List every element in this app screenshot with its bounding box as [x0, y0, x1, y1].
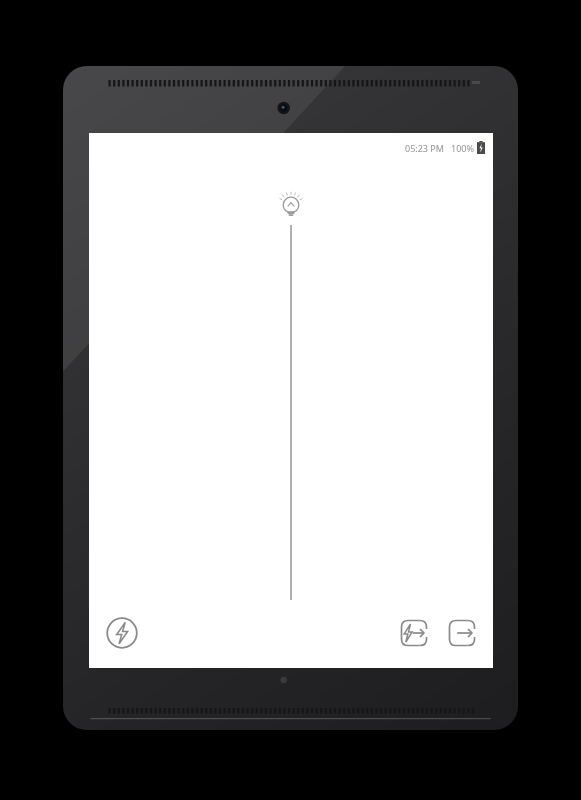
button[interactable]: Exit — [443, 614, 481, 652]
button[interactable]: Flash and exit — [395, 614, 433, 652]
button[interactable]: Pull cord — [285, 225, 297, 600]
staticText: 05:23 PM — [405, 142, 444, 154]
button[interactable]: Strobe — [103, 614, 141, 652]
button[interactable]: Toggle light — [271, 193, 311, 233]
staticText: 100% — [451, 142, 474, 154]
